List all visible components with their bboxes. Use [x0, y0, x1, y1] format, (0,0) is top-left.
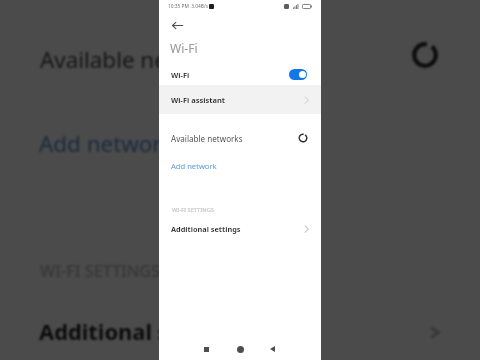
button[interactable]: Back	[170, 18, 185, 33]
staticText: Additional settings	[39, 317, 247, 347]
button[interactable]: Additional settings	[159, 218, 321, 240]
staticText: WI-FI SETTINGS	[40, 260, 161, 282]
button[interactable]: Add network	[159, 154, 321, 177]
staticText: Add network	[171, 161, 217, 171]
staticText: Available networks	[171, 133, 243, 144]
staticText: WI-FI SETTINGS	[172, 206, 214, 214]
button[interactable]: Home	[234, 343, 246, 355]
button[interactable]: Back	[266, 343, 278, 355]
staticText: Add network	[39, 128, 174, 159]
staticText: Wi-Fi	[171, 70, 190, 80]
button[interactable]: Wi-Fi assistant	[159, 85, 321, 114]
staticText: 10:35 PM 3.04B/s	[168, 3, 208, 10]
staticText: Available networks	[40, 44, 238, 75]
staticText: Wi-Fi	[170, 40, 198, 56]
button[interactable]: Wi-Fi	[159, 63, 321, 86]
button[interactable]: Recents	[200, 343, 212, 355]
staticText: Additional settings	[171, 224, 241, 234]
staticText: Wi-Fi assistant	[171, 95, 226, 105]
